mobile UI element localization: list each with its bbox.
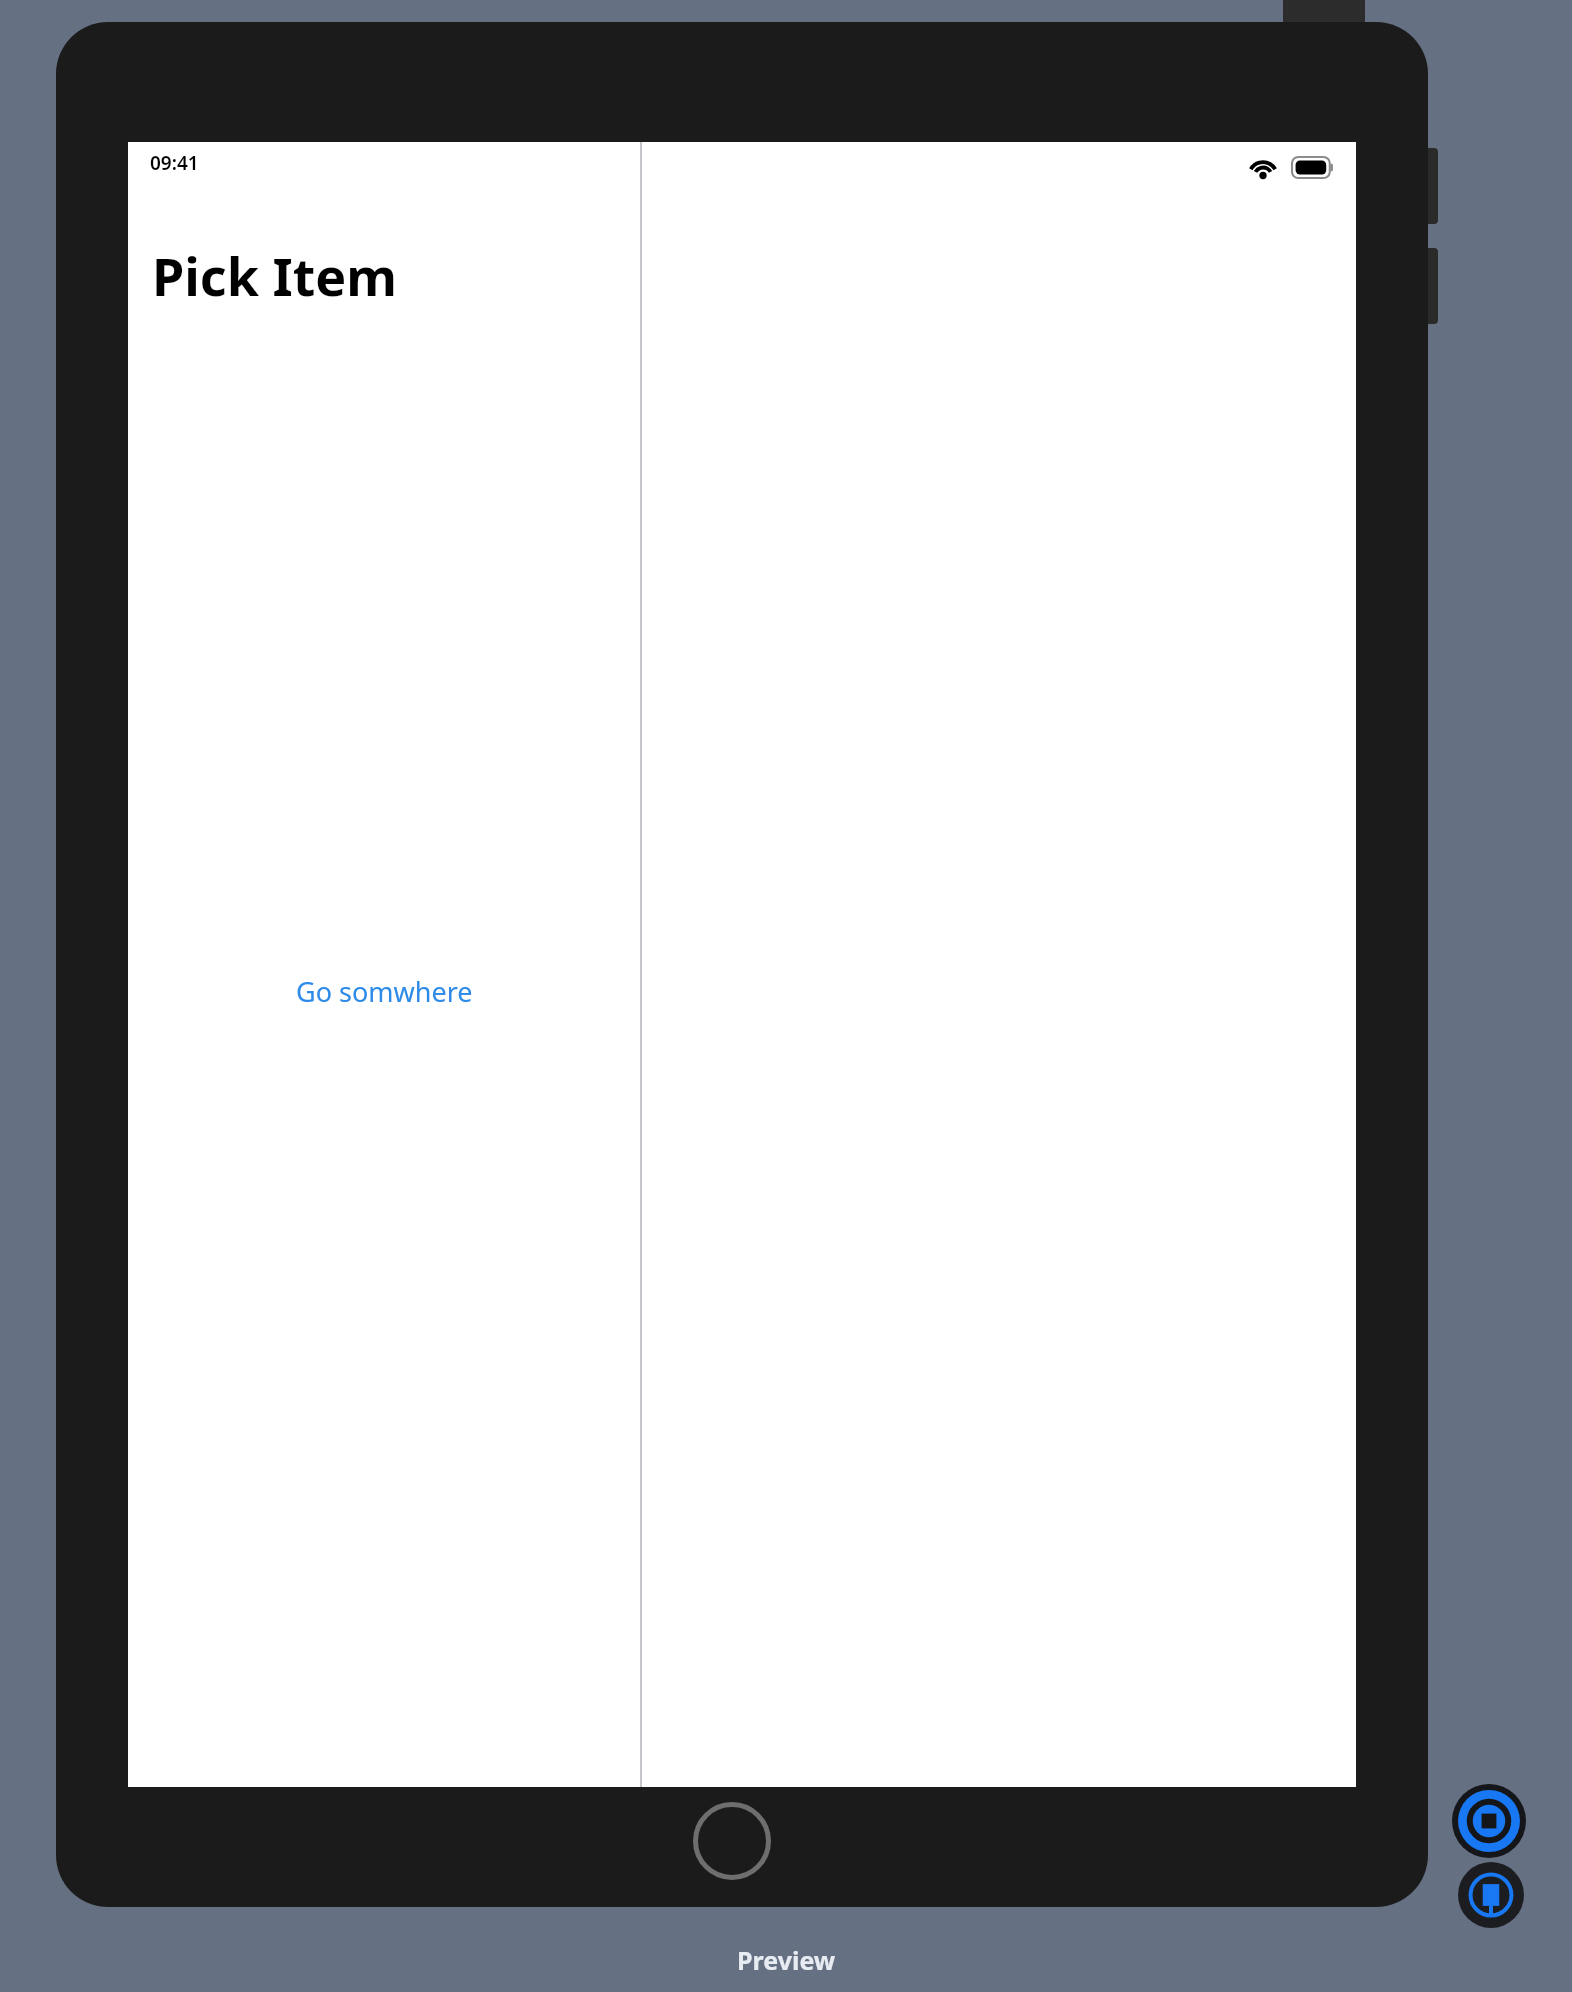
staticText: Go somwhere [296, 973, 473, 1010]
button[interactable]: Home [693, 1802, 771, 1880]
button[interactable]: Toggle preview mode [1458, 1862, 1524, 1928]
button[interactable]: Go somwhere [288, 967, 481, 1016]
staticText: Pick Item [152, 240, 397, 311]
staticText: 09:41 [150, 150, 199, 176]
staticText: Preview [737, 1943, 836, 1977]
button[interactable]: Select preview device [1452, 1784, 1526, 1858]
